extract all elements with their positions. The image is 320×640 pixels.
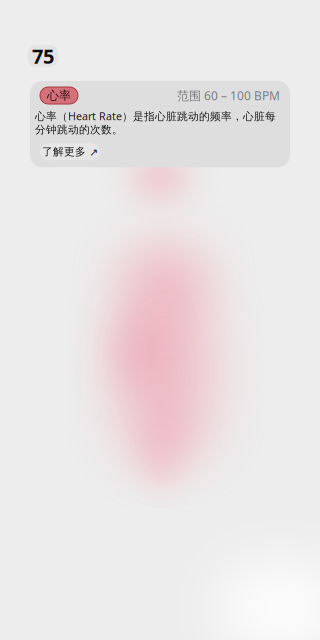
staticText: 心率（Heart Rate）是指心脏跳动的频率，心脏每分钟跳动的次数。 (35, 109, 276, 136)
staticText: 75 (32, 43, 54, 69)
button[interactable]: 75 (28, 45, 58, 67)
button[interactable]: 了解更多 ↗ (40, 143, 100, 160)
staticText: 了解更多 ↗ (42, 145, 98, 158)
staticText: 心率 (47, 88, 71, 103)
staticText: 范围 60 – 100 BPM (177, 87, 280, 103)
